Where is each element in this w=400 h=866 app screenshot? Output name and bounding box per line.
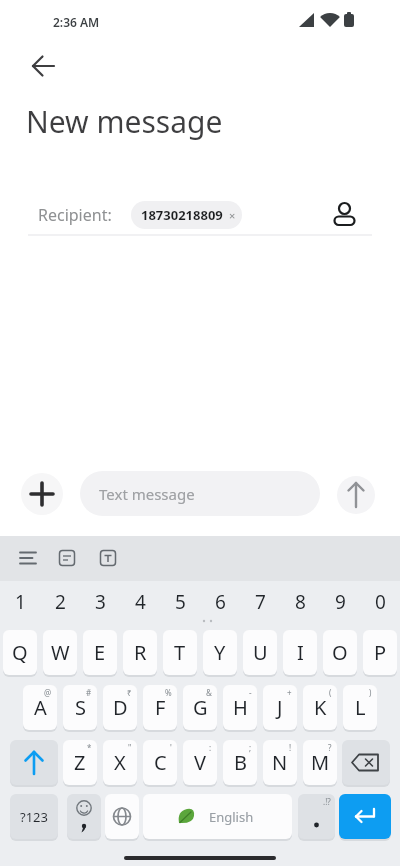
button[interactable]: 7 xyxy=(240,582,280,622)
button[interactable]: H xyxy=(223,685,257,730)
button[interactable] xyxy=(24,50,58,84)
button[interactable] xyxy=(105,794,139,839)
staticText: ( xyxy=(329,687,332,698)
staticText: : xyxy=(209,742,212,753)
button[interactable]: R xyxy=(123,630,157,675)
staticText: X xyxy=(114,749,126,776)
staticText: × xyxy=(229,208,236,223)
button[interactable] xyxy=(10,740,58,785)
button[interactable]: B xyxy=(223,740,257,785)
button[interactable]: Y xyxy=(203,630,237,675)
staticText: E xyxy=(94,639,106,666)
button[interactable]: F xyxy=(143,685,177,730)
button[interactable]: D xyxy=(103,685,137,730)
staticText: 9 xyxy=(335,589,346,615)
button[interactable]: S xyxy=(63,685,97,730)
staticText: Y xyxy=(214,639,226,666)
button[interactable] xyxy=(53,544,81,572)
staticText: N xyxy=(272,749,288,776)
staticText: V xyxy=(194,749,206,776)
staticText: .!? xyxy=(323,796,331,807)
staticText: I xyxy=(297,639,304,666)
button[interactable]: J xyxy=(263,685,297,730)
button[interactable]: 1 xyxy=(0,582,40,622)
staticText: 8 xyxy=(295,589,306,615)
staticText: @ xyxy=(44,687,52,698)
staticText: 2 xyxy=(55,589,66,615)
button[interactable] xyxy=(327,194,363,230)
button[interactable]: C xyxy=(143,740,177,785)
button[interactable]: 5 xyxy=(160,582,200,622)
staticText: ?123 xyxy=(20,808,48,826)
staticText: B xyxy=(234,749,247,776)
button[interactable]: L xyxy=(343,685,377,730)
button[interactable]: A xyxy=(23,685,57,730)
staticText: Q xyxy=(12,639,28,666)
button[interactable]: G xyxy=(183,685,217,730)
button[interactable] xyxy=(94,544,122,572)
staticText: Recipient: xyxy=(38,204,112,226)
button[interactable]: P xyxy=(363,630,397,675)
staticText: K xyxy=(314,694,327,721)
button[interactable]: 8 xyxy=(280,582,320,622)
staticText: Text message xyxy=(99,484,195,504)
button[interactable]: .!? xyxy=(298,794,335,839)
staticText: L xyxy=(355,694,366,721)
staticText: G xyxy=(193,694,208,721)
staticText: ! xyxy=(289,742,292,753)
button[interactable]: I xyxy=(283,630,317,675)
button[interactable]: ?123 xyxy=(10,794,58,839)
staticText: P xyxy=(374,639,387,666)
button[interactable] xyxy=(342,740,390,785)
button[interactable]: M xyxy=(303,740,337,785)
staticText: % xyxy=(165,687,172,698)
staticText: 0 xyxy=(375,589,386,615)
button[interactable]: 9 xyxy=(320,582,360,622)
button[interactable]: E xyxy=(83,630,117,675)
button[interactable]: Text message xyxy=(80,471,320,516)
button[interactable]: N xyxy=(263,740,297,785)
staticText: 18730218809 xyxy=(141,206,223,224)
button[interactable]: X xyxy=(103,740,137,785)
staticText: O xyxy=(332,639,348,666)
staticText: 7 xyxy=(255,589,266,615)
button[interactable]: O xyxy=(323,630,357,675)
button[interactable]: Z xyxy=(63,740,97,785)
staticText: W xyxy=(51,639,70,666)
staticText: & xyxy=(206,687,212,698)
button[interactable] xyxy=(337,476,375,514)
button[interactable]: 6 xyxy=(200,582,240,622)
button[interactable]: 3 xyxy=(80,582,120,622)
staticText: ' xyxy=(170,742,172,753)
staticText: - xyxy=(249,687,252,698)
button[interactable] xyxy=(339,794,391,839)
staticText: U xyxy=(253,639,268,666)
button[interactable]: 0 xyxy=(360,582,400,622)
button[interactable]: K xyxy=(303,685,337,730)
button[interactable]: 4 xyxy=(120,582,160,622)
button[interactable]: W xyxy=(43,630,77,675)
button[interactable] xyxy=(67,794,101,839)
staticText: # xyxy=(86,687,92,698)
button[interactable]: 18730218809 xyxy=(131,201,242,229)
staticText: Z xyxy=(74,749,86,776)
staticText: English xyxy=(209,808,254,826)
button[interactable] xyxy=(21,473,63,515)
button[interactable]: English xyxy=(143,794,292,839)
button[interactable]: U xyxy=(243,630,277,675)
button[interactable]: 2 xyxy=(40,582,80,622)
button[interactable] xyxy=(14,544,42,572)
staticText: " xyxy=(128,742,132,753)
staticText: 4 xyxy=(135,589,146,615)
button[interactable]: T xyxy=(163,630,197,675)
staticText: 3 xyxy=(95,589,106,615)
staticText: + xyxy=(287,687,292,698)
button[interactable]: V xyxy=(183,740,217,785)
staticText: T xyxy=(174,639,186,666)
staticText: J xyxy=(277,694,283,721)
staticText: 1 xyxy=(15,589,26,615)
staticText: S xyxy=(75,694,86,721)
button[interactable]: Q xyxy=(3,630,37,675)
staticText: ; xyxy=(249,742,252,753)
staticText: A xyxy=(34,694,47,721)
